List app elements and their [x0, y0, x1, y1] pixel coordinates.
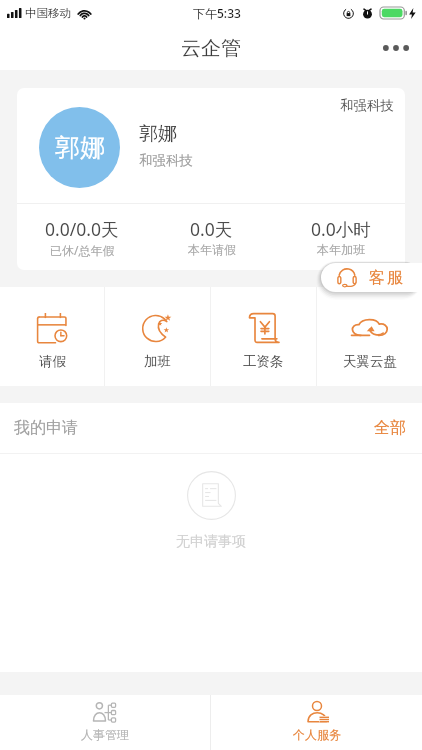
- staticText: 中国移动: [25, 6, 71, 20]
- staticText: 0.0天: [190, 217, 233, 241]
- staticText: 和强科技: [340, 97, 394, 114]
- staticText: 加班: [144, 353, 171, 370]
- button[interactable]: 工资条: [211, 287, 316, 386]
- button[interactable]: 人事管理: [0, 695, 210, 750]
- staticText: 郭娜: [139, 122, 177, 146]
- button[interactable]: 加班: [105, 287, 210, 386]
- staticText: 本年加班: [317, 242, 365, 257]
- staticText: 客服: [368, 268, 404, 288]
- button[interactable]: 个人服务: [211, 695, 422, 750]
- button[interactable]: 请假: [0, 287, 104, 386]
- staticText: 0.0小时: [311, 217, 371, 241]
- staticText: 工资条: [243, 353, 284, 370]
- button[interactable]: 客服: [321, 263, 422, 292]
- staticText: 天翼云盘: [343, 353, 397, 370]
- button[interactable]: 0.0/0.0天: [17, 204, 147, 270]
- button[interactable]: More options: [376, 28, 416, 68]
- button[interactable]: 0.0小时: [276, 204, 405, 270]
- staticText: 人事管理: [81, 727, 129, 742]
- button[interactable]: 天翼云盘: [317, 287, 422, 386]
- staticText: 云企管: [181, 36, 241, 61]
- staticText: 我的申请: [14, 418, 78, 438]
- staticText: 和强科技: [139, 152, 193, 169]
- staticText: 郭娜: [55, 132, 105, 163]
- staticText: 个人服务: [293, 727, 341, 742]
- staticText: 已休/总年假: [50, 242, 115, 258]
- staticText: 无申请事项: [176, 533, 246, 551]
- staticText: 全部: [374, 418, 406, 438]
- button[interactable]: 0.0天: [147, 204, 276, 270]
- staticText: 本年请假: [188, 242, 236, 257]
- staticText: 下午5:33: [193, 5, 241, 21]
- staticText: 0.0/0.0天: [45, 217, 119, 241]
- staticText: 请假: [39, 353, 66, 370]
- button[interactable]: 和强科技: [17, 88, 405, 270]
- button[interactable]: 全部: [372, 412, 408, 444]
